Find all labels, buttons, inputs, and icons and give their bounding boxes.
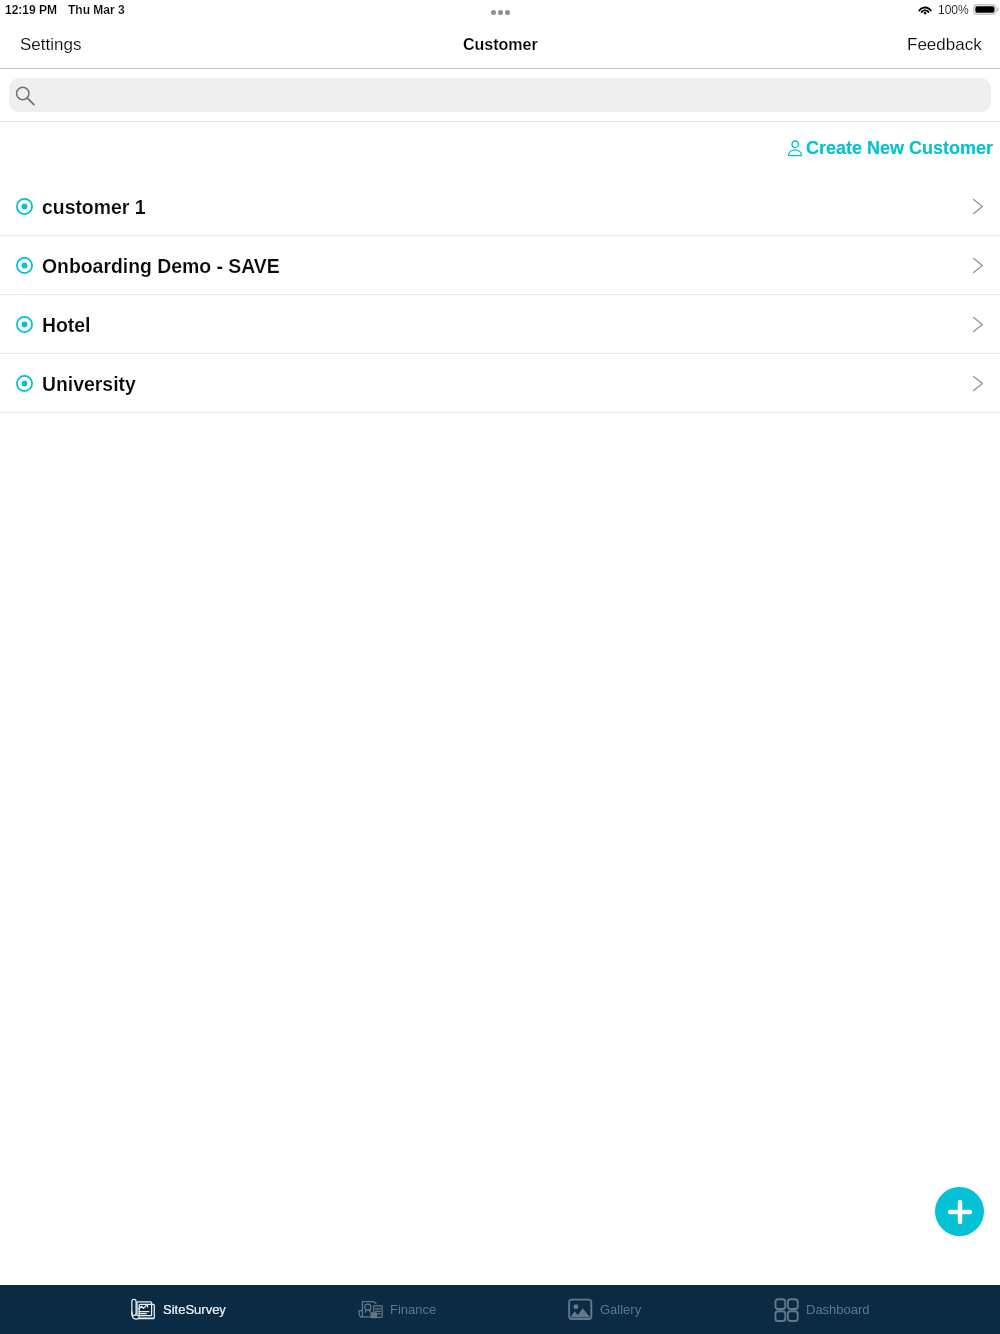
staticText: Finance xyxy=(390,1302,437,1317)
staticText: customer 1 xyxy=(42,196,146,218)
staticText: Onboarding Demo - SAVE xyxy=(42,255,280,277)
staticText: University xyxy=(42,373,136,395)
staticText: Dashboard xyxy=(806,1302,870,1317)
button[interactable]: Feedback xyxy=(886,23,1000,68)
button[interactable]: customer 1 xyxy=(0,177,1000,236)
staticText: Feedback xyxy=(907,35,982,54)
button[interactable]: Create New Customer xyxy=(780,122,1000,177)
button[interactable]: Finance xyxy=(357,1285,437,1334)
button[interactable]: Gallery xyxy=(567,1285,642,1334)
staticText: Create New Customer xyxy=(806,138,994,158)
button[interactable]: Search xyxy=(9,78,991,112)
button[interactable]: SiteSurvey xyxy=(130,1285,226,1334)
staticText: SiteSurvey xyxy=(163,1302,226,1317)
staticText: Customer xyxy=(463,36,538,54)
button[interactable]: Add new customer xyxy=(935,1187,984,1236)
staticText: Hotel xyxy=(42,314,91,336)
staticText: Gallery xyxy=(600,1302,642,1317)
button[interactable]: Onboarding Demo - SAVE xyxy=(0,236,1000,295)
staticText: 100% xyxy=(938,3,969,16)
button[interactable]: Dashboard xyxy=(773,1285,870,1334)
staticText: 12:19 PM xyxy=(5,3,58,16)
button[interactable]: University xyxy=(0,354,1000,413)
button[interactable]: Hotel xyxy=(0,295,1000,354)
button[interactable]: Settings xyxy=(0,23,102,68)
staticText: Thu Mar 3 xyxy=(68,3,125,16)
staticText: Settings xyxy=(20,35,82,54)
